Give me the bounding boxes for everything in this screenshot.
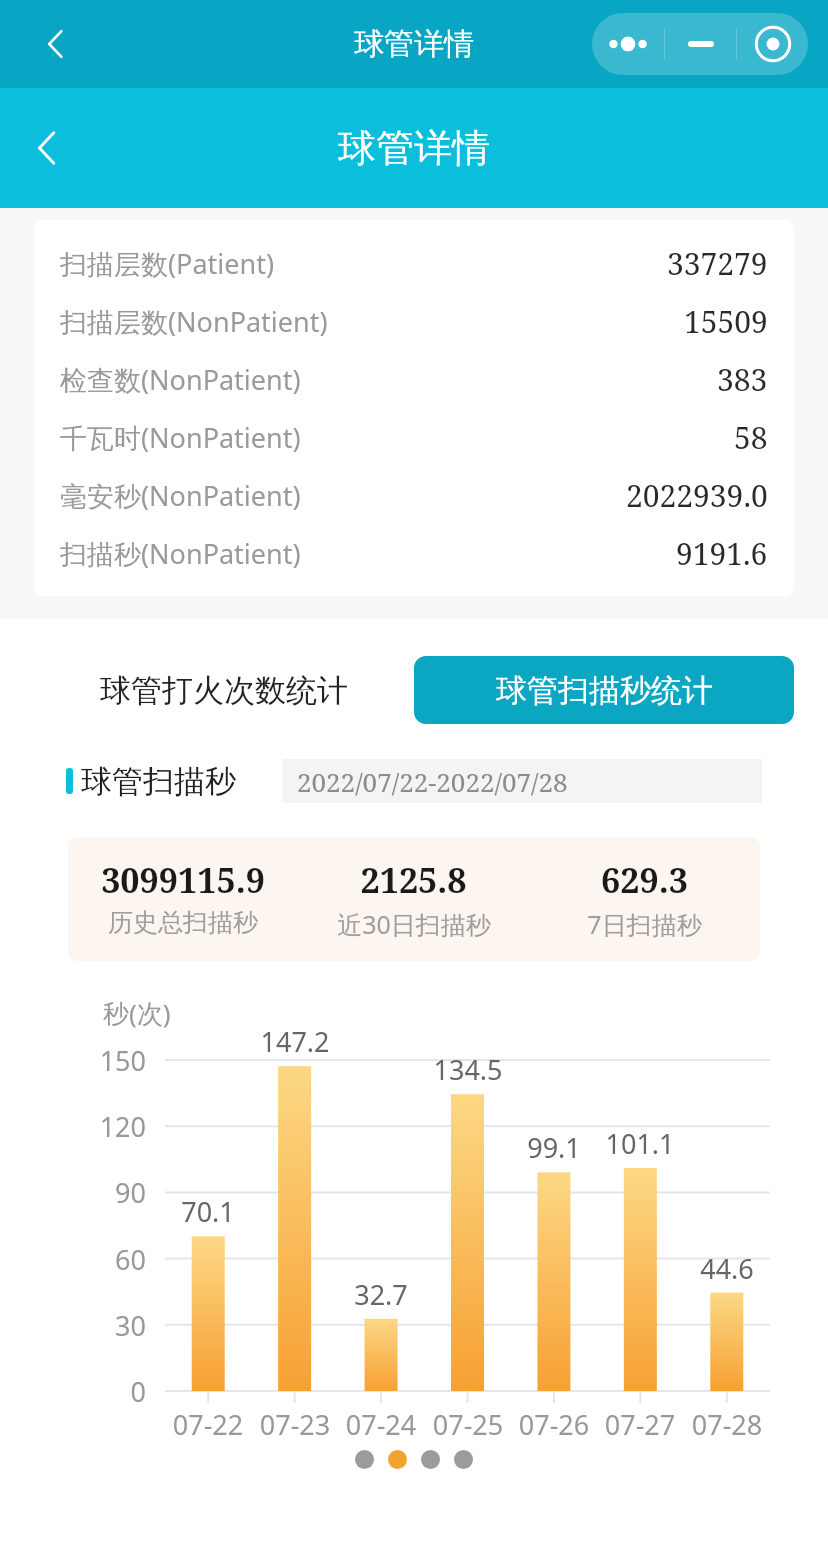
button[interactable] (388, 1450, 407, 1469)
button[interactable]: 629.3 (529, 857, 760, 941)
button[interactable]: 扫描秒(NonPatient) (60, 524, 768, 582)
button[interactable]: 2022/07/22-2022/07/28 (283, 759, 762, 803)
staticText: 毫安秒(NonPatient) (60, 477, 301, 514)
staticText: 07-22 (153, 1406, 263, 1443)
button[interactable]: 球管扫描秒统计 (414, 656, 794, 724)
staticText: 07-26 (499, 1406, 609, 1443)
staticText: 扫描秒(NonPatient) (60, 535, 301, 572)
button[interactable]: Minimize (665, 13, 736, 75)
button[interactable]: 毫安秒(NonPatient) (60, 466, 768, 524)
staticText: 07-28 (672, 1406, 782, 1443)
staticText: 58 (734, 417, 768, 458)
staticText: 球管详情 (354, 25, 474, 63)
button[interactable]: 扫描层数(NonPatient) (60, 292, 768, 350)
button[interactable]: Close (737, 13, 808, 75)
staticText: 90 (0, 1174, 146, 1211)
button[interactable] (454, 1450, 473, 1469)
staticText: 扫描层数(NonPatient) (60, 303, 328, 340)
staticText: 99.1 (499, 1129, 609, 1166)
staticText: 70.1 (153, 1193, 263, 1230)
staticText: 0 (0, 1373, 146, 1410)
staticText: 扫描层数(Patient) (60, 245, 275, 282)
staticText: 2125.8 (360, 857, 467, 903)
button[interactable]: Back (28, 16, 84, 72)
staticText: 134.5 (413, 1051, 523, 1088)
staticText: 383 (717, 359, 768, 400)
staticText: 7日扫描秒 (587, 907, 702, 941)
button[interactable]: 3099115.9 (68, 857, 298, 938)
staticText: 120 (0, 1108, 146, 1145)
button[interactable]: Back (16, 117, 78, 179)
staticText: 07-27 (585, 1406, 695, 1443)
staticText: 337279 (667, 243, 768, 284)
staticText: 2022/07/22-2022/07/28 (297, 764, 568, 799)
staticText: 07-23 (240, 1406, 350, 1443)
staticText: 150 (0, 1042, 146, 1079)
staticText: 44.6 (672, 1250, 782, 1287)
staticText: 球管打火次数统计 (100, 671, 348, 710)
staticText: 2022939.0 (626, 475, 768, 516)
button[interactable]: 2125.8 (298, 857, 529, 941)
staticText: 15509 (684, 301, 768, 342)
button[interactable]: 扫描层数(Patient) (60, 234, 768, 292)
staticText: 球管扫描秒 (81, 762, 236, 801)
button[interactable]: 球管打火次数统计 (34, 656, 414, 724)
staticText: 30 (0, 1307, 146, 1344)
staticText: 球管扫描秒统计 (496, 671, 713, 710)
button[interactable] (421, 1450, 440, 1469)
button[interactable]: 检查数(NonPatient) (60, 350, 768, 408)
staticText: 3099115.9 (101, 857, 265, 903)
staticText: 147.2 (240, 1023, 350, 1060)
staticText: 60 (0, 1241, 146, 1278)
staticText: 629.3 (601, 857, 688, 903)
button[interactable]: More (592, 13, 664, 75)
staticText: 32.7 (326, 1276, 436, 1313)
staticText: 9191.6 (676, 533, 768, 574)
staticText: 101.1 (585, 1125, 695, 1162)
staticText: 秒(次) (103, 995, 171, 1031)
button[interactable] (355, 1450, 374, 1469)
staticText: 历史总扫描秒 (108, 907, 258, 938)
staticText: 07-25 (413, 1406, 523, 1443)
staticText: 近30日扫描秒 (337, 907, 491, 941)
staticText: 千瓦时(NonPatient) (60, 419, 301, 456)
button[interactable]: 千瓦时(NonPatient) (60, 408, 768, 466)
staticText: 球管详情 (338, 124, 490, 172)
staticText: 检查数(NonPatient) (60, 361, 301, 398)
staticText: 07-24 (326, 1406, 436, 1443)
